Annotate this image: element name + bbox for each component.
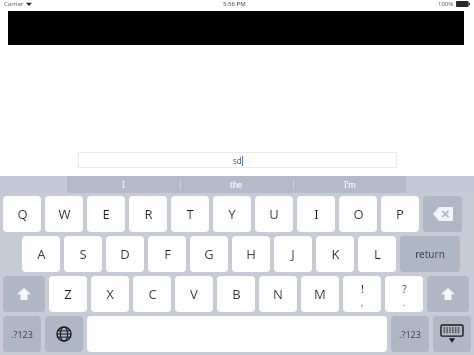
staticText: ! <box>361 281 364 296</box>
button[interactable]: M <box>301 276 339 312</box>
staticText: L <box>374 245 381 263</box>
button[interactable]: I <box>67 176 180 193</box>
button[interactable]: ? <box>385 276 423 312</box>
staticText: F <box>164 245 171 263</box>
button[interactable]: .?123 <box>391 316 429 352</box>
button[interactable]: D <box>106 236 144 272</box>
staticText: .?123 <box>11 328 33 340</box>
staticText: sd <box>233 155 242 166</box>
staticText: J <box>291 245 295 263</box>
staticText: ? <box>402 281 407 296</box>
button[interactable]: F <box>148 236 186 272</box>
staticText: D <box>120 245 130 263</box>
button[interactable]: I <box>297 196 335 232</box>
button[interactable]: X <box>91 276 129 312</box>
button[interactable]: C <box>133 276 171 312</box>
button[interactable]: Hide keyboard <box>433 316 471 352</box>
staticText: E <box>102 205 110 223</box>
staticText: Carrier <box>4 0 24 8</box>
button[interactable]: O <box>339 196 377 232</box>
button[interactable]: Z <box>49 276 87 312</box>
staticText: 100% <box>438 0 454 8</box>
staticText: the <box>230 179 243 190</box>
staticText: Q <box>17 205 28 223</box>
staticText: .?123 <box>399 328 421 340</box>
button[interactable]: return <box>400 236 460 272</box>
button[interactable]: .?123 <box>3 316 41 352</box>
button[interactable]: Change language <box>45 316 83 352</box>
button[interactable]: U <box>255 196 293 232</box>
staticText: W <box>58 205 71 223</box>
staticText: N <box>273 285 283 303</box>
staticText: B <box>232 285 241 303</box>
staticText: U <box>269 205 279 223</box>
button[interactable]: H <box>232 236 270 272</box>
button[interactable]: Backspace <box>423 196 462 232</box>
button[interactable]: P <box>381 196 419 232</box>
staticText: R <box>144 205 153 223</box>
staticText: Z <box>64 285 72 303</box>
button[interactable]: E <box>87 196 125 232</box>
staticText: S <box>79 245 87 263</box>
staticText: 5:56 PM <box>223 0 246 8</box>
button[interactable]: Y <box>213 196 251 232</box>
button[interactable]: T <box>171 196 209 232</box>
button[interactable]: J <box>274 236 312 272</box>
staticText: K <box>331 245 340 263</box>
button[interactable]: R <box>129 196 167 232</box>
staticText: G <box>204 245 214 263</box>
staticText: X <box>106 285 114 303</box>
staticText: I'm <box>344 179 356 190</box>
button[interactable]: G <box>190 236 228 272</box>
staticText: I <box>122 179 125 190</box>
button[interactable]: L <box>358 236 396 272</box>
staticText: T <box>186 205 194 223</box>
button[interactable]: Shift <box>3 276 45 312</box>
button[interactable]: Q <box>3 196 41 232</box>
button[interactable]: K <box>316 236 354 272</box>
button[interactable]: ! <box>343 276 381 312</box>
button[interactable]: B <box>217 276 255 312</box>
staticText: V <box>190 285 198 303</box>
staticText: Y <box>228 205 236 223</box>
button[interactable]: W <box>45 196 83 232</box>
button[interactable]: N <box>259 276 297 312</box>
staticText: C <box>148 285 157 303</box>
staticText: A <box>37 245 46 263</box>
staticText: I <box>314 205 319 223</box>
staticText: P <box>396 205 404 223</box>
button[interactable]: Shift <box>427 276 469 312</box>
button[interactable]: V <box>175 276 213 312</box>
button[interactable]: sd <box>78 152 397 168</box>
staticText: O <box>353 205 364 223</box>
button[interactable]: A <box>22 236 60 272</box>
button[interactable]: the <box>180 176 293 193</box>
button[interactable]: S <box>64 236 102 272</box>
staticText: M <box>314 285 326 303</box>
staticText: . <box>403 296 406 308</box>
staticText: H <box>246 245 256 263</box>
button[interactable]: I'm <box>293 176 406 193</box>
staticText: , <box>361 296 364 308</box>
staticText: return <box>415 247 445 261</box>
